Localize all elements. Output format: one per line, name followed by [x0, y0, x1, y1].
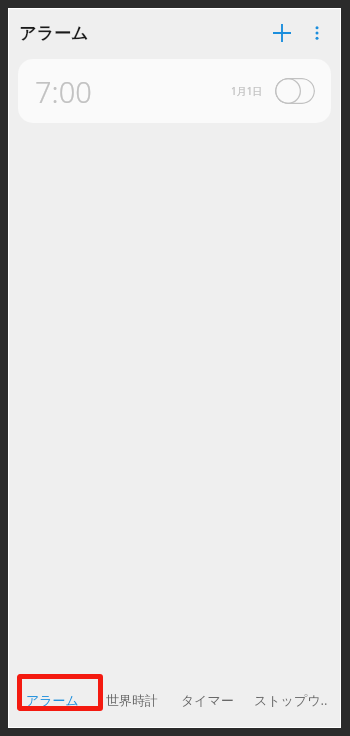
button[interactable]: アラームを追加 — [264, 15, 300, 51]
staticText: 7:00 — [35, 72, 92, 111]
button[interactable]: タイマー — [169, 672, 245, 727]
button[interactable]: 世界時計 — [95, 672, 169, 727]
staticText: アラーム — [19, 23, 89, 44]
staticText: 世界時計 — [106, 692, 158, 708]
button[interactable]: アラーム — [9, 672, 95, 727]
staticText: ストップウ.. — [254, 691, 328, 709]
button[interactable]: ストップウ.. — [245, 672, 337, 727]
staticText: 1月1日 — [231, 84, 263, 98]
button[interactable]: アラームのオン/オフ — [275, 78, 315, 104]
staticText: アラーム — [26, 692, 79, 708]
staticText: タイマー — [181, 692, 234, 708]
button[interactable]: その他のオプション — [300, 16, 334, 50]
button[interactable]: 7:00 — [18, 59, 331, 123]
